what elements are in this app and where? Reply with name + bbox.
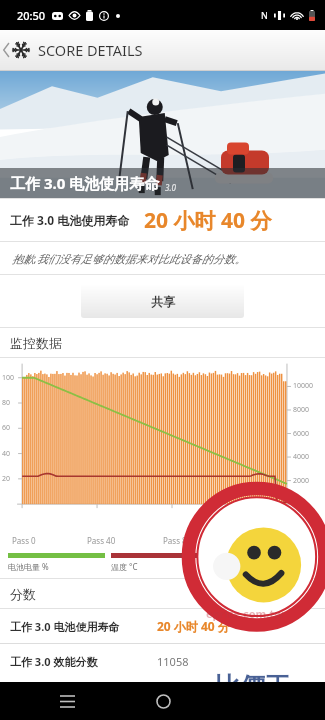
button[interactable]: 工作 3.0 电池使用寿命 bbox=[0, 609, 325, 643]
staticText: 100 bbox=[2, 373, 19, 383]
staticText: Pass 40 bbox=[87, 535, 116, 546]
staticText: 温度 °C bbox=[111, 561, 138, 572]
button[interactable]: Home bbox=[148, 686, 178, 716]
staticText: 工作 3.0 效能分数 bbox=[10, 654, 98, 669]
staticText: 20:50 bbox=[17, 8, 46, 23]
staticText: 共享 bbox=[151, 294, 175, 309]
staticText: 工作 3.0 电池使用寿命 bbox=[10, 212, 130, 228]
staticText: 40 bbox=[2, 449, 19, 459]
staticText: 电池电量 % bbox=[8, 561, 49, 572]
staticText: 3.0 bbox=[165, 182, 176, 193]
staticText: 8000 bbox=[293, 405, 310, 415]
staticText: 6000 bbox=[293, 429, 310, 439]
staticText: Score per pass bbox=[214, 561, 269, 572]
staticText: 抱歉,我们没有足够的数据来对比此设备的分数。 bbox=[12, 251, 246, 266]
button[interactable]: 共享 bbox=[81, 285, 244, 318]
button[interactable]: Back bbox=[0, 30, 153, 70]
staticText: 4000 bbox=[293, 452, 310, 462]
staticText: N bbox=[261, 9, 268, 21]
staticText: 分数 bbox=[10, 586, 36, 602]
staticText: 10000 bbox=[293, 381, 314, 391]
button[interactable]: Recent apps bbox=[52, 686, 82, 716]
staticText: 11058 bbox=[157, 654, 189, 669]
staticText: Pass 80 bbox=[163, 535, 192, 546]
button[interactable]: 工作 3.0 效能分数 bbox=[0, 644, 325, 678]
staticText: SCORE DETAILS bbox=[38, 40, 143, 60]
staticText: 2000 bbox=[293, 476, 310, 486]
staticText: 20 小时 40 分 bbox=[157, 618, 230, 634]
staticText: 80 bbox=[2, 398, 19, 408]
staticText: 60 bbox=[2, 423, 19, 433]
staticText: 比價王 bbox=[215, 671, 290, 682]
staticText: 监控数据 bbox=[10, 335, 62, 351]
staticText: 20 bbox=[2, 474, 19, 484]
staticText: Pass 120 bbox=[237, 535, 270, 546]
staticText: 工作 3.0 电池使用寿命 bbox=[10, 173, 160, 193]
staticText: eprice.com.tw bbox=[206, 606, 284, 621]
staticText: 20 小时 40 分 bbox=[144, 206, 272, 235]
staticText: 工作 3.0 电池使用寿命 bbox=[10, 619, 120, 634]
staticText: Pass 0 bbox=[12, 535, 36, 546]
